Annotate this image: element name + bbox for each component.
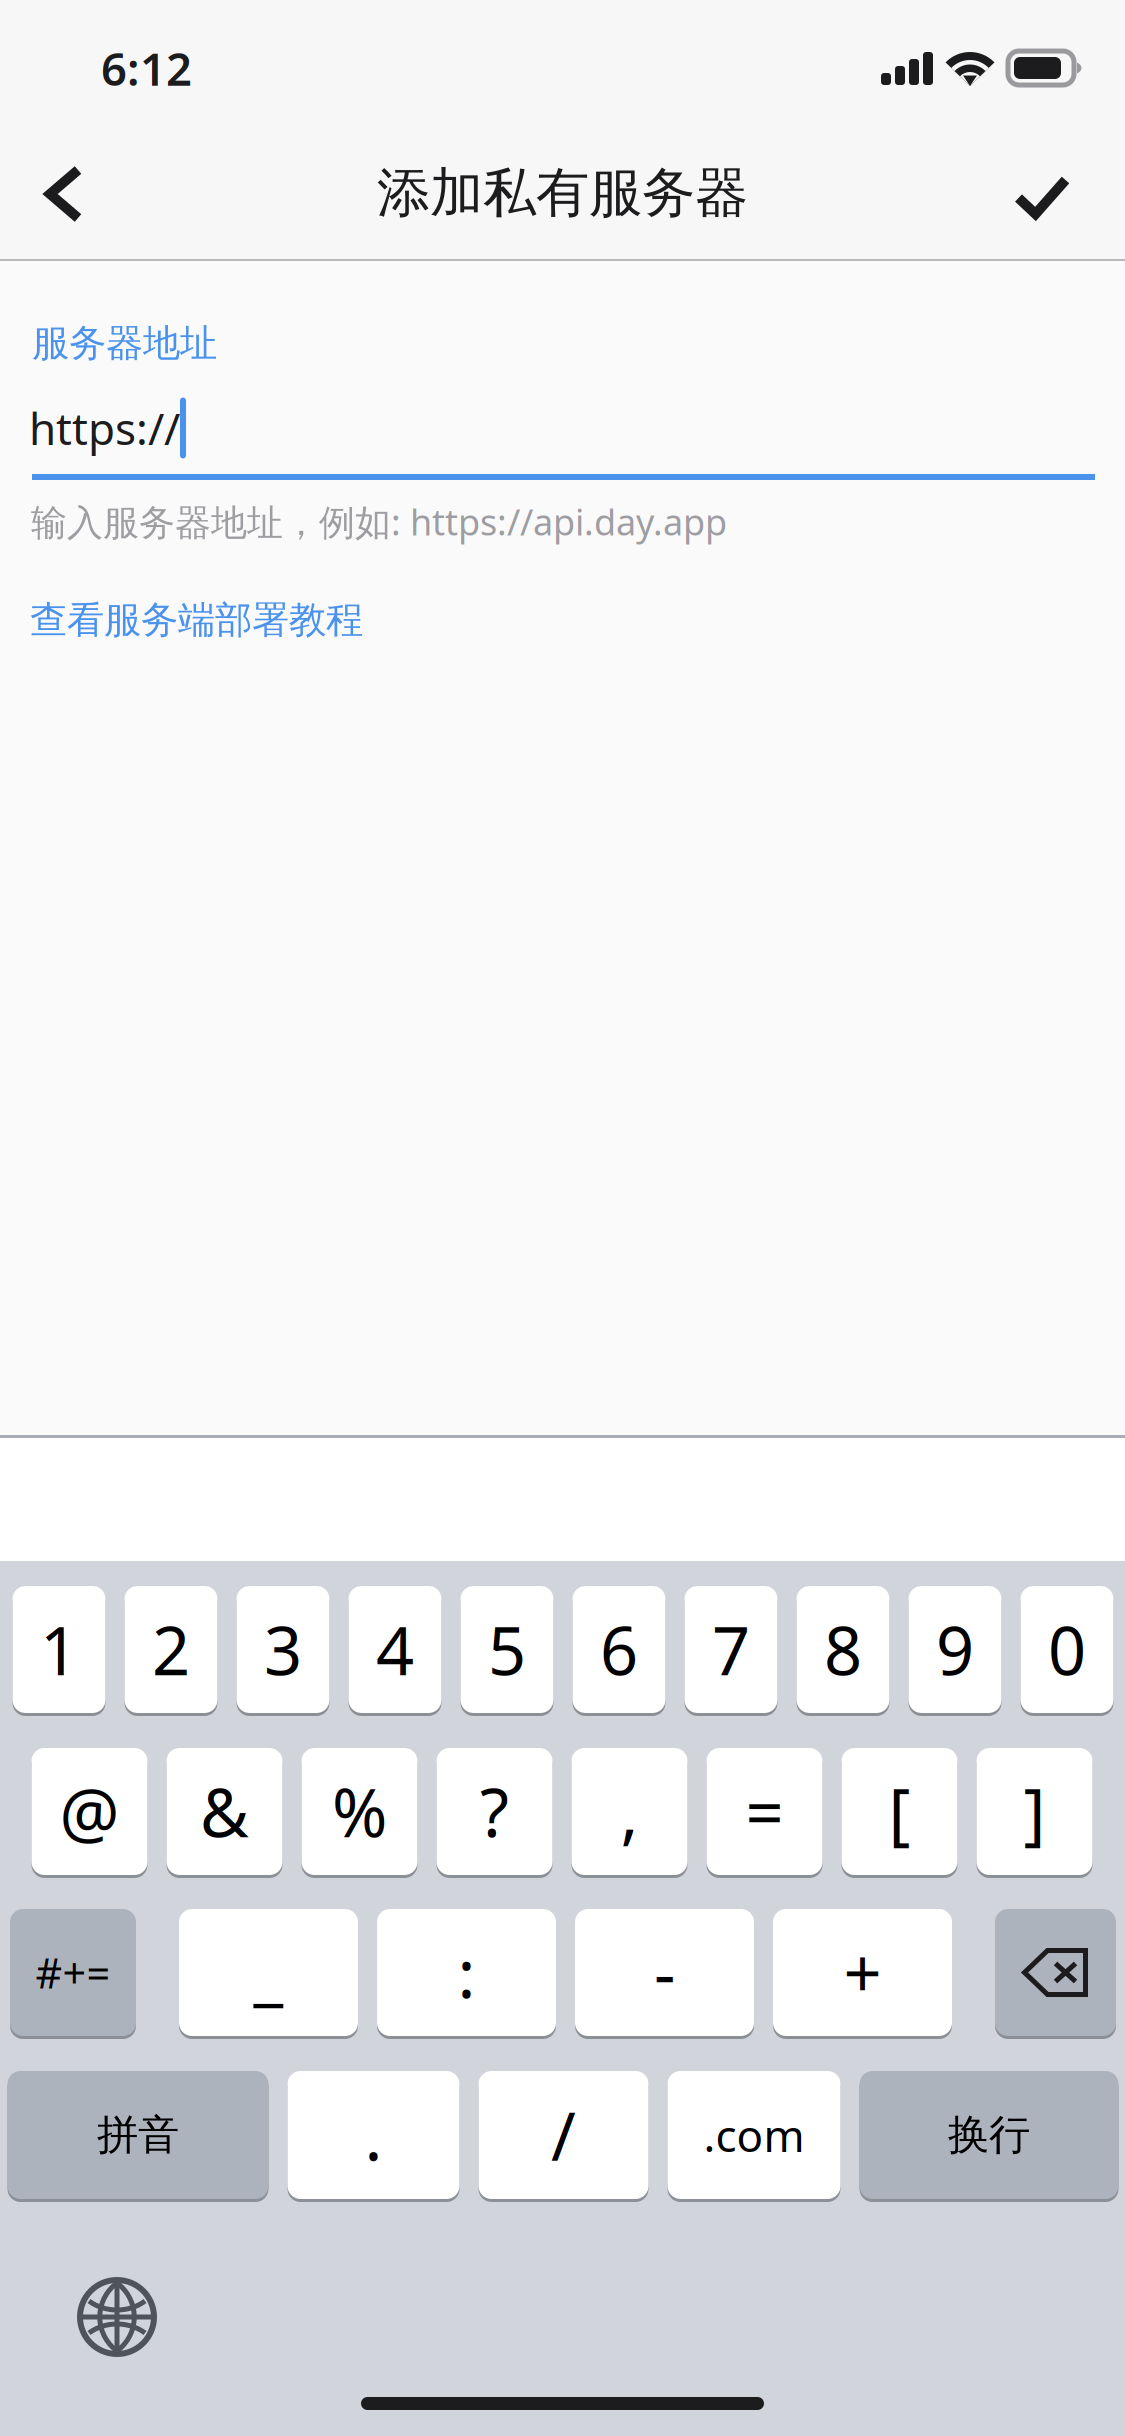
button[interactable]: = <box>706 1748 822 1875</box>
staticText: ? <box>480 1767 509 1856</box>
button[interactable]: 1 <box>12 1586 105 1713</box>
staticText: . <box>364 2091 382 2179</box>
button[interactable]: 6 <box>572 1586 665 1713</box>
button[interactable]: 4 <box>348 1586 441 1713</box>
staticText: 拼音 <box>97 2110 179 2160</box>
staticText: 换行 <box>948 2110 1030 2160</box>
staticText: #+= <box>35 1945 110 2000</box>
staticText: 6:12 <box>101 38 192 98</box>
staticText: 9 <box>936 1605 974 1694</box>
staticText: ] <box>1023 1767 1045 1856</box>
staticText: 输入服务器地址，例如: https://api.day.app <box>31 498 727 545</box>
staticText: 6 <box>600 1605 638 1694</box>
button[interactable]: 3 <box>236 1586 329 1713</box>
staticText: : <box>457 1928 475 2017</box>
button[interactable]: % <box>301 1748 417 1875</box>
button[interactable]: .com <box>667 2071 840 2199</box>
staticText: 3 <box>264 1605 302 1694</box>
button[interactable]: [ <box>841 1748 957 1875</box>
button[interactable]: 拼音 <box>7 2071 268 2199</box>
button[interactable]: #+= <box>10 1909 136 2036</box>
staticText: 5 <box>488 1605 526 1694</box>
button[interactable]: 0 <box>1020 1586 1113 1713</box>
staticText: .com <box>703 2106 804 2164</box>
staticText: = <box>745 1767 783 1856</box>
staticText: 4 <box>376 1605 414 1694</box>
staticText: @ <box>59 1767 119 1856</box>
button[interactable]: 2 <box>124 1586 217 1713</box>
button[interactable]: + <box>773 1909 952 2036</box>
staticText: 服务器地址 <box>32 320 217 366</box>
button[interactable]: 查看服务端部署教程 <box>30 597 363 643</box>
button[interactable]: Switch keyboard <box>80 2280 154 2354</box>
button[interactable]: 5 <box>460 1586 553 1713</box>
button[interactable]: , <box>571 1748 687 1875</box>
button[interactable]: . <box>287 2071 459 2199</box>
staticText: , <box>620 1767 638 1856</box>
button[interactable]: 换行 <box>859 2071 1118 2199</box>
button[interactable]: 8 <box>796 1586 889 1713</box>
button[interactable]: _ <box>179 1909 358 2036</box>
button[interactable]: / <box>478 2071 648 2199</box>
button[interactable]: 7 <box>684 1586 777 1713</box>
button[interactable]: 9 <box>908 1586 1001 1713</box>
staticText: / <box>551 2091 576 2179</box>
staticText: - <box>654 1928 675 2017</box>
button[interactable]: Save <box>988 153 1096 241</box>
staticText: 1 <box>40 1605 78 1694</box>
staticText: & <box>200 1767 249 1856</box>
button[interactable]: & <box>166 1748 282 1875</box>
button[interactable]: - <box>575 1909 754 2036</box>
staticText: [ <box>888 1767 910 1856</box>
button[interactable]: Back <box>7 160 121 228</box>
staticText: 查看服务端部署教程 <box>30 597 363 643</box>
button[interactable]: @ <box>31 1748 147 1875</box>
staticText: 8 <box>824 1605 862 1694</box>
staticText: https:// <box>29 399 180 457</box>
button[interactable]: ] <box>976 1748 1092 1875</box>
staticText: 2 <box>152 1605 190 1694</box>
staticText: 7 <box>712 1605 750 1694</box>
staticText: 添加私有服务器 <box>377 160 748 226</box>
staticText: % <box>332 1767 387 1856</box>
button[interactable]: : <box>377 1909 556 2036</box>
staticText: _ <box>253 1928 283 2017</box>
staticText: 0 <box>1048 1605 1086 1694</box>
button[interactable] <box>995 1909 1116 2036</box>
button[interactable]: ? <box>436 1748 552 1875</box>
staticText: + <box>843 1928 881 2017</box>
